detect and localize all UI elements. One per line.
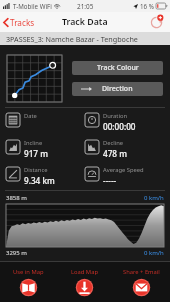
staticText: 478 m <box>103 148 127 159</box>
button[interactable] <box>7 55 62 102</box>
staticText: 0 km/h <box>144 249 164 257</box>
staticText: 3295 m <box>6 249 27 257</box>
staticText: 3858 m <box>6 194 27 202</box>
button[interactable]: Distance <box>6 166 85 186</box>
staticText: T-Mobile WiFi <box>13 2 52 10</box>
button[interactable] <box>6 204 164 247</box>
staticText: 00:00:00 <box>103 121 136 132</box>
button[interactable]: Share + Email <box>113 262 170 302</box>
staticText: 9.34 km <box>24 175 55 186</box>
button[interactable]: Tracks <box>3 17 35 28</box>
staticText: 16 % <box>140 2 154 10</box>
staticText: Load Map <box>71 268 98 276</box>
staticText: Decline <box>103 139 124 147</box>
staticText: Distance <box>24 166 48 174</box>
button[interactable]: Average Speed <box>85 166 164 186</box>
button[interactable]: Refresh track <box>148 14 164 30</box>
staticText: 917 m <box>24 148 48 159</box>
button[interactable]: Date <box>6 112 85 127</box>
staticText: Incline <box>24 139 43 147</box>
staticText: 0 km/h <box>144 194 164 202</box>
button[interactable]: Incline <box>6 139 85 159</box>
staticText: Track Data <box>62 16 108 28</box>
button[interactable]: Duration <box>85 112 164 132</box>
staticText: ----- <box>103 175 117 186</box>
button[interactable]: Decline <box>85 139 164 159</box>
staticText: Duration <box>103 112 128 120</box>
button[interactable]: Track Colour <box>72 61 163 75</box>
staticText: Share + Email <box>123 268 160 276</box>
staticText: Tracks <box>10 17 35 28</box>
staticText: Direction <box>102 84 133 94</box>
staticText: Average Speed <box>103 166 144 174</box>
staticText: Date <box>24 112 37 120</box>
button[interactable]: Load Map <box>56 262 113 302</box>
staticText: Use in Map <box>13 268 44 276</box>
staticText: Track Colour <box>97 63 139 73</box>
staticText: 3PASSES_3: Namche Bazar - Tengboche <box>6 34 138 44</box>
button[interactable]: Use in Map <box>0 262 56 302</box>
staticText: 21:05 <box>77 2 94 11</box>
button[interactable]: Direction <box>72 82 163 96</box>
